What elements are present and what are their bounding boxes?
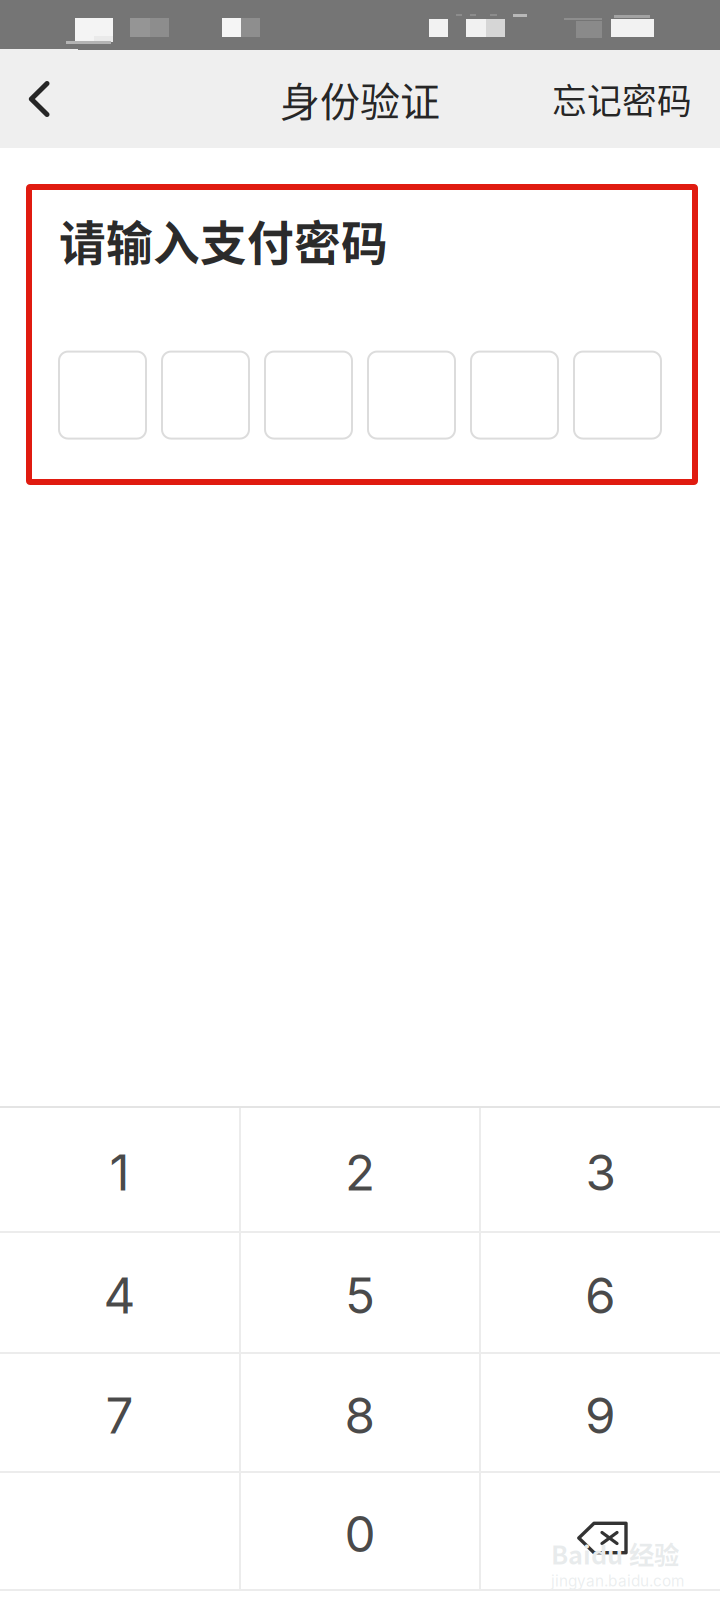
staticText: Baidu 经验 (551, 1535, 679, 1572)
staticText: 7 (105, 1386, 133, 1445)
button[interactable]: 4 (0, 1233, 239, 1352)
staticText: 身份验证 (280, 70, 440, 128)
button[interactable]: 9 (481, 1354, 720, 1471)
button[interactable]: 7 (0, 1354, 239, 1471)
staticText: 1 (109, 1143, 129, 1202)
staticText: 9 (585, 1386, 616, 1445)
staticText: 2 (345, 1143, 375, 1202)
button[interactable]: 6 (481, 1233, 720, 1352)
button[interactable]: 5 (241, 1233, 479, 1352)
button[interactable]: 忘记密码 (552, 44, 720, 154)
button[interactable]: 2 (241, 1108, 479, 1231)
staticText: jingyan.baidu.com (551, 1572, 684, 1590)
staticText: 8 (344, 1386, 375, 1445)
button[interactable]: Delete (481, 1473, 720, 1589)
button[interactable]: 1 (0, 1108, 239, 1231)
staticText: 6 (585, 1266, 616, 1325)
staticText: 请输入支付密码 (59, 206, 388, 274)
staticText: 0 (344, 1504, 375, 1564)
staticText: 5 (345, 1266, 375, 1325)
button[interactable]: 0 (241, 1473, 479, 1589)
button[interactable]: 8 (241, 1354, 479, 1471)
button[interactable]: 3 (481, 1108, 720, 1231)
staticText: 4 (103, 1266, 135, 1325)
staticText: 忘记密码 (552, 74, 692, 124)
button[interactable]: Back (0, 49, 78, 149)
staticText: 3 (585, 1143, 615, 1202)
